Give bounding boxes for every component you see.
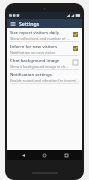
staticText: Size report visitors daily (10, 29, 59, 35)
button[interactable]: Open navigation drawer (9, 20, 16, 27)
button[interactable]: Unchecked (72, 59, 79, 66)
staticText: Enable sound and vibration for incoming … (10, 78, 79, 83)
staticText: Chat background image (10, 57, 60, 63)
button[interactable]: Chat background image (7, 56, 82, 69)
staticText: Show a background image in chat (only in… (10, 64, 70, 69)
button[interactable]: Back (18, 150, 29, 160)
staticText: Show collections and number of visits (10, 36, 70, 41)
button[interactable]: Inform for new visitors (7, 42, 82, 55)
staticText: Inform for new visitors (10, 43, 57, 49)
staticText: Notification settings (10, 71, 52, 77)
button[interactable]: Size report visitors daily (7, 28, 82, 41)
button[interactable]: Recent apps (61, 150, 72, 160)
staticText: Notification on new visitor (10, 50, 56, 55)
button[interactable]: Home (39, 150, 50, 160)
button[interactable]: Checked (72, 45, 79, 52)
button[interactable]: Notification settings (7, 70, 82, 83)
button[interactable]: Checked (72, 31, 79, 38)
staticText: Settings (19, 20, 40, 27)
